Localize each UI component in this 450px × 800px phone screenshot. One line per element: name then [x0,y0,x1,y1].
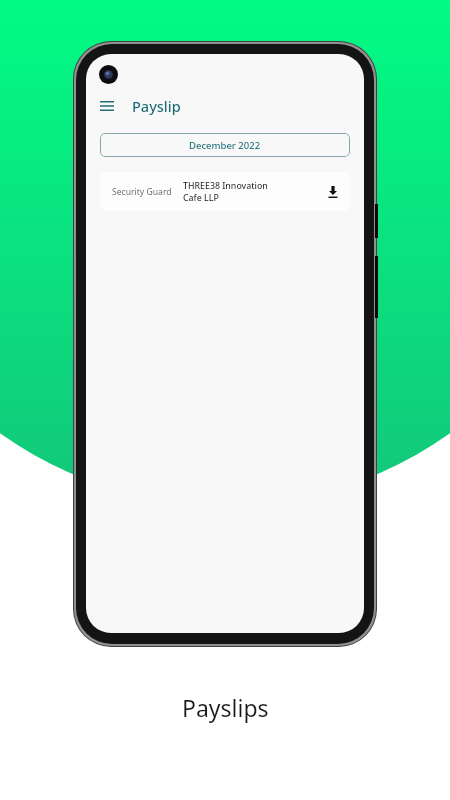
button[interactable]: Open navigation menu [92,91,122,121]
button[interactable]: Download payslip [320,179,346,205]
staticText: THREE38 Innovation [183,180,268,192]
staticText: December 2022 [189,139,261,152]
staticText: Payslips [182,692,269,723]
button[interactable]: Security Guard [100,172,350,211]
staticText: Security Guard [112,186,172,198]
staticText: Cafe LLP [183,192,219,204]
button[interactable]: December 2022 [100,133,350,157]
staticText: Payslip [132,96,181,116]
